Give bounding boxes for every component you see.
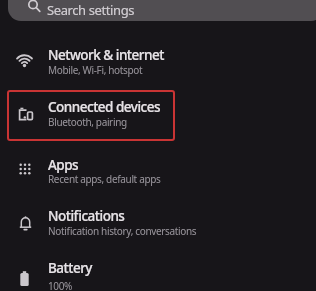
button[interactable]: Network & internet bbox=[0, 36, 316, 88]
staticText: Mobile, Wi-Fi, hotspot bbox=[48, 63, 143, 77]
staticText: 100% bbox=[48, 279, 73, 291]
staticText: Battery bbox=[48, 259, 92, 277]
button[interactable]: Search settings bbox=[8, 0, 316, 21]
staticText: Apps bbox=[48, 156, 79, 174]
staticText: Bluetooth, pairing bbox=[48, 115, 127, 129]
staticText: Network & internet bbox=[48, 46, 164, 64]
button[interactable]: Connected devices bbox=[0, 90, 316, 144]
button[interactable]: Battery bbox=[0, 251, 316, 291]
staticText: Notification history, conversations bbox=[48, 224, 197, 238]
staticText: Connected devices bbox=[48, 98, 160, 116]
staticText: Recent apps, default apps bbox=[48, 172, 161, 186]
button[interactable]: Apps bbox=[0, 148, 316, 200]
button[interactable]: Notifications bbox=[0, 199, 316, 251]
staticText: Search settings bbox=[47, 1, 135, 19]
staticText: Notifications bbox=[48, 207, 125, 225]
